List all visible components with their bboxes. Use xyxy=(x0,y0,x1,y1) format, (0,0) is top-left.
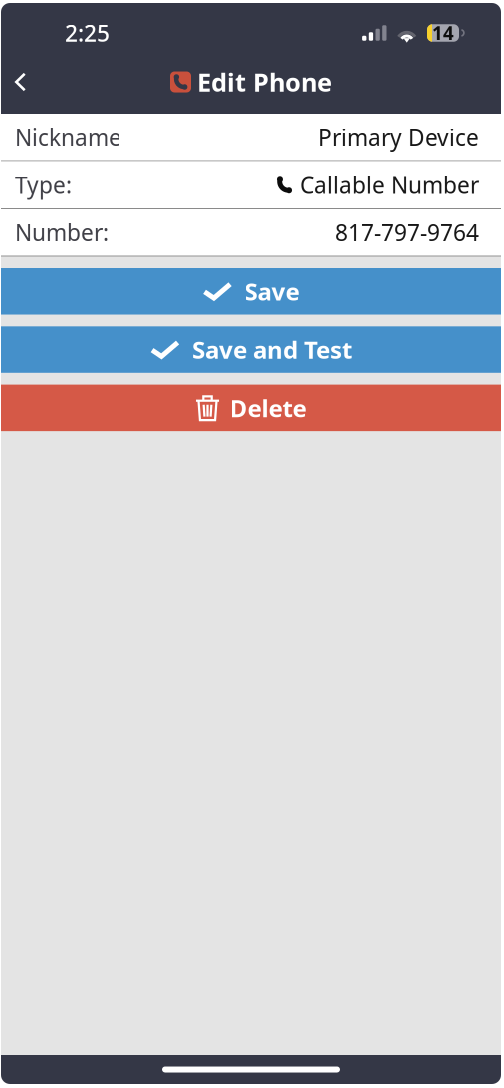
staticText: 14 xyxy=(432,21,454,45)
staticText: Primary Device xyxy=(318,122,479,152)
button[interactable]: Back xyxy=(1,63,44,109)
button[interactable]: Save and Test xyxy=(1,326,501,373)
staticText: Type: xyxy=(15,170,72,200)
staticText: 2:25 xyxy=(65,18,110,48)
staticText: Number: xyxy=(15,217,109,247)
staticText: 817-797-9764 xyxy=(335,217,479,247)
staticText: Callable Number xyxy=(300,170,479,200)
staticText: Delete xyxy=(229,392,306,424)
button[interactable]: Delete xyxy=(1,385,501,431)
staticText: Edit Phone xyxy=(197,65,332,99)
staticText: Nickname xyxy=(15,122,122,152)
staticText: Save and Test xyxy=(192,334,352,365)
staticText: Save xyxy=(244,275,299,307)
button[interactable]: Save xyxy=(1,268,501,314)
